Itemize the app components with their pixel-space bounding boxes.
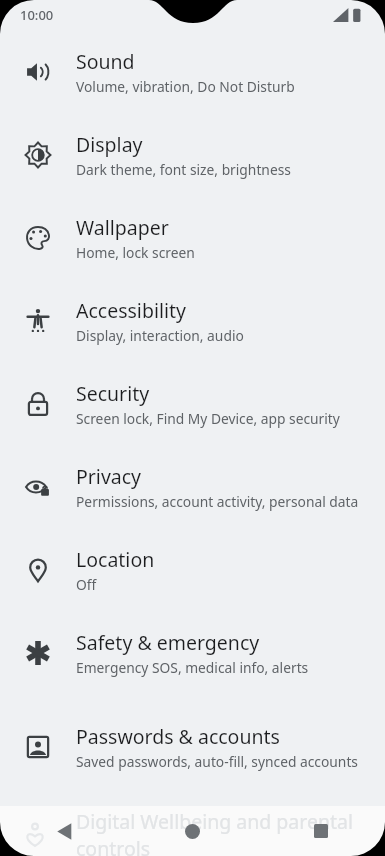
staticText: 10:00 [20,6,54,24]
staticText: Digital Wellbeing and parental [76,808,354,835]
button[interactable]: Accessibility [0,279,385,362]
staticText: Screen lock, Find My Device, app securit… [76,409,340,428]
button[interactable]: Home [128,806,257,856]
staticText: Permissions, account activity, personal … [76,492,359,511]
staticText: Volume, vibration, Do Not Disturb [76,77,295,96]
button[interactable]: Safety & emergency [0,611,385,694]
staticText: Emergency SOS, medical info, alerts [76,658,309,677]
staticText: Security [76,380,150,407]
staticText: Accessibility [76,297,186,324]
staticText: Saved passwords, auto-fill, synced accou… [76,752,358,771]
button[interactable]: Sound [0,30,385,113]
staticText: Passwords & accounts [76,723,280,750]
staticText: Sound [76,48,135,75]
staticText: Off [76,575,97,594]
button[interactable]: Location [0,528,385,611]
button[interactable]: Back [0,806,128,856]
staticText: Privacy [76,463,142,490]
staticText: Display, interaction, audio [76,326,244,345]
staticText: Dark theme, font size, brightness [76,160,291,179]
button[interactable]: Wallpaper [0,196,385,279]
staticText: controls [76,835,151,856]
button[interactable]: Security [0,362,385,445]
button[interactable]: Recent apps [257,806,385,856]
staticText: Wallpaper [76,214,169,241]
button[interactable]: Privacy [0,445,385,528]
button[interactable]: Passwords & accounts [0,694,385,800]
staticText: Home, lock screen [76,243,195,262]
staticText: Location [76,546,155,573]
button[interactable]: Display [0,113,385,196]
staticText: Display [76,131,143,158]
staticText: Safety & emergency [76,629,260,656]
